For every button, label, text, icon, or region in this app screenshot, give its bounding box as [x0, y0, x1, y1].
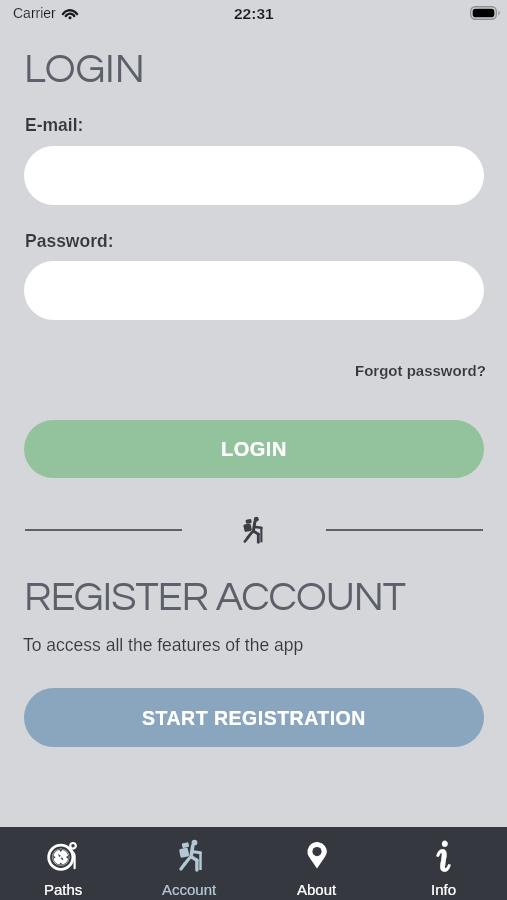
button[interactable]: Account: [126, 827, 253, 900]
staticText: About: [297, 881, 337, 898]
staticText: Paths: [44, 881, 83, 898]
button[interactable]: Paths: [0, 827, 126, 900]
staticText: START REGISTRATION: [142, 707, 366, 729]
button[interactable]: About: [253, 827, 380, 900]
button[interactable]: Info: [380, 827, 507, 900]
staticText: REGISTER ACCOUNT: [24, 576, 405, 618]
button[interactable]: Password input: [24, 261, 484, 320]
staticText: E-mail:: [25, 115, 84, 135]
staticText: LOGIN: [221, 438, 287, 460]
staticText: 22:31: [234, 5, 274, 22]
staticText: LOGIN: [24, 48, 145, 90]
staticText: Carrier: [13, 5, 56, 21]
staticText: To access all the features of the app: [23, 635, 304, 655]
button[interactable]: START REGISTRATION: [24, 688, 484, 747]
button[interactable]: Forgot password?: [355, 362, 486, 379]
staticText: Account: [162, 881, 217, 898]
button[interactable]: E-mail input: [24, 146, 484, 205]
staticText: Info: [431, 881, 457, 898]
staticText: i: [437, 830, 451, 882]
button[interactable]: LOGIN: [24, 420, 484, 478]
staticText: Password:: [25, 231, 114, 251]
